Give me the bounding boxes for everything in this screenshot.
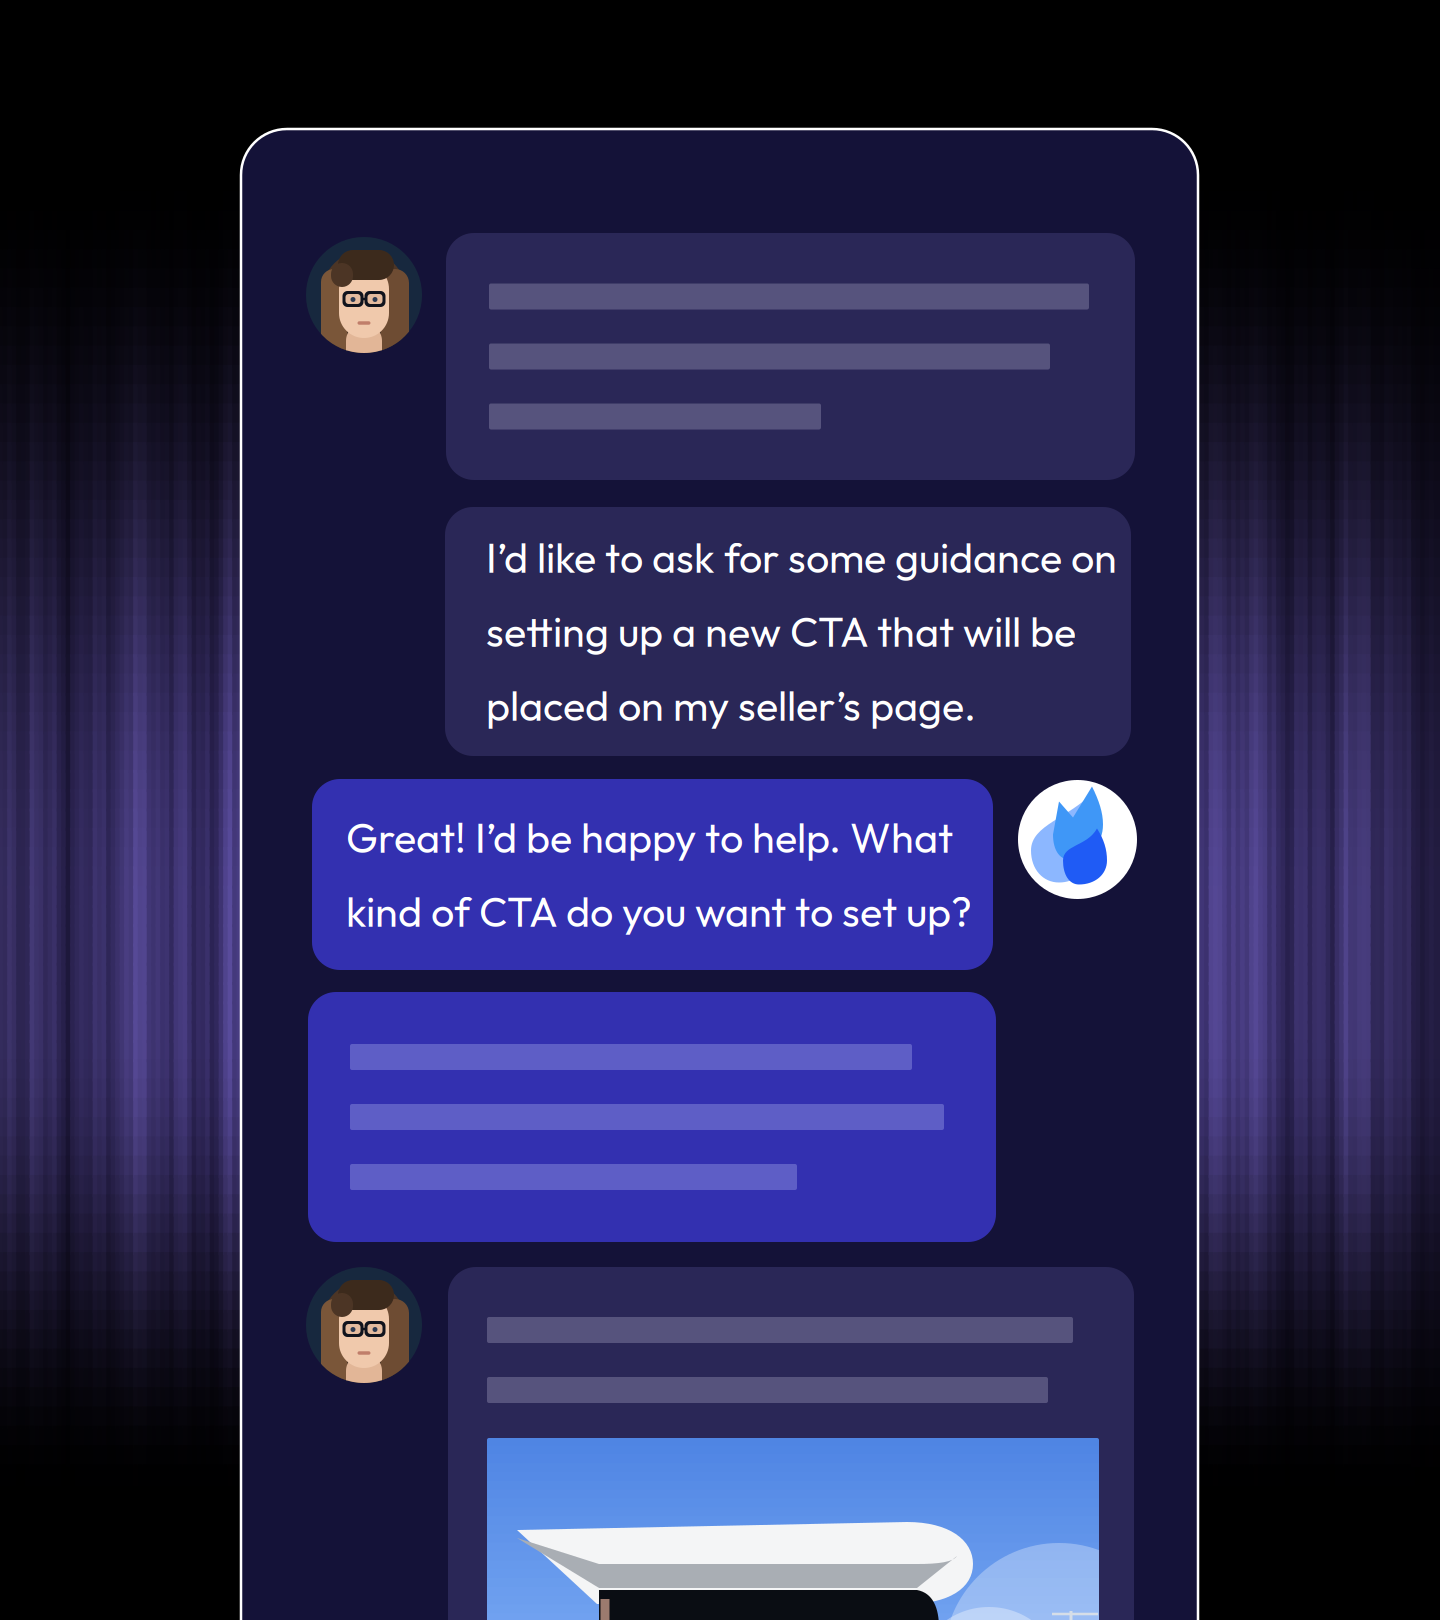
button[interactable]: [308, 992, 996, 1242]
button[interactable]: Great! I’d be happy to help. What kind o…: [312, 779, 993, 970]
button[interactable]: I’d like to ask for some guidance on set…: [445, 507, 1131, 756]
staticText: Great! I’d be happy to help. What kind o…: [346, 811, 972, 938]
button[interactable]: [448, 1267, 1134, 1620]
staticText: I’d like to ask for some guidance on set…: [486, 531, 1117, 732]
button[interactable]: [446, 233, 1135, 480]
button[interactable]: Contact avatar: [306, 237, 422, 353]
button[interactable]: Assistant: [1018, 780, 1137, 899]
button[interactable]: Contact avatar: [306, 1267, 422, 1383]
